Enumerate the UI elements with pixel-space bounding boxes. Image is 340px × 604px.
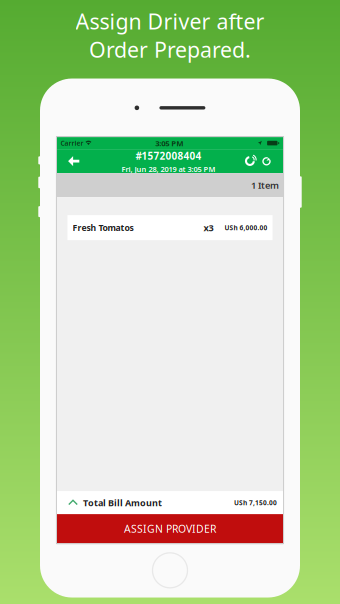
staticText: Fresh Tomatos (72, 222, 133, 233)
button[interactable]: Back (57, 149, 91, 173)
staticText: Total Bill Amount (83, 496, 162, 509)
button[interactable]: Call customer (241, 149, 258, 173)
button[interactable]: ASSIGN PROVIDER (57, 514, 283, 543)
staticText: USh 6,000.00 (224, 223, 267, 232)
staticText: 3:05 PM (155, 138, 183, 148)
staticText: Fri, Jun 28, 2019 at 3:05 PM (121, 164, 215, 174)
staticText: x3 (203, 221, 213, 234)
staticText: ASSIGN PROVIDER (124, 521, 216, 536)
staticText: 1 Item (251, 179, 279, 191)
staticText: Assign Driver after (75, 7, 264, 35)
staticText: #1572008404 (135, 149, 201, 163)
staticText: Order Prepared. (89, 35, 251, 64)
staticText: Carrier (60, 139, 83, 148)
staticText: USh 7,150.00 (234, 498, 277, 507)
button[interactable]: Refresh order (259, 149, 273, 173)
